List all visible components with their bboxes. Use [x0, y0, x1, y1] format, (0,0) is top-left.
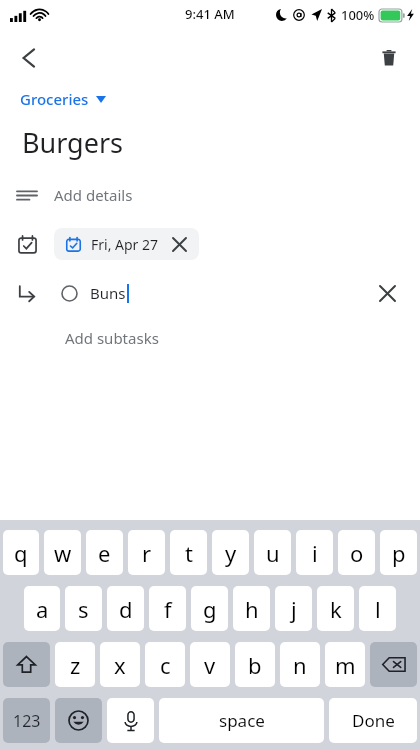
staticText: s	[78, 594, 89, 624]
button[interactable]: b	[235, 642, 275, 687]
button[interactable]: Remove date	[171, 236, 187, 252]
button[interactable]: Back	[6, 35, 52, 81]
button[interactable]: space	[159, 698, 324, 743]
button[interactable]: Voice input	[107, 698, 154, 743]
button[interactable]: d	[107, 586, 144, 631]
staticText: i	[312, 538, 318, 568]
button[interactable]: j	[275, 586, 312, 631]
staticText: u	[266, 538, 280, 568]
button[interactable]: m	[325, 642, 365, 687]
button[interactable]: Add subtasks	[0, 316, 420, 360]
button[interactable]: v	[190, 642, 230, 687]
staticText: w	[54, 538, 72, 568]
staticText: g	[203, 594, 217, 624]
staticText: Buns	[90, 283, 126, 303]
staticText: z	[70, 650, 81, 680]
button[interactable]: n	[280, 642, 320, 687]
staticText: c	[160, 650, 171, 680]
staticText: j	[291, 594, 297, 624]
staticText: 100%	[341, 6, 375, 24]
button[interactable]: Add details	[0, 172, 420, 218]
button[interactable]: u	[254, 530, 291, 575]
button[interactable]: x	[100, 642, 140, 687]
button[interactable]: k	[317, 586, 354, 631]
staticText: q	[14, 538, 28, 568]
button[interactable]: f	[149, 586, 186, 631]
staticText: k	[330, 594, 342, 624]
staticText: 9:41 AM	[185, 5, 235, 23]
button[interactable]: r	[128, 530, 165, 575]
button[interactable]: Remove subtask	[372, 278, 402, 308]
button[interactable]: a	[24, 586, 60, 631]
button[interactable]: w	[44, 530, 81, 575]
button[interactable]: p	[380, 530, 417, 575]
button[interactable]: z	[55, 642, 95, 687]
button[interactable]: c	[145, 642, 185, 687]
staticText: Add details	[54, 185, 133, 205]
button[interactable]: i	[296, 530, 333, 575]
staticText: p	[392, 538, 406, 568]
staticText: l	[375, 594, 381, 624]
button[interactable]: Groceries	[20, 86, 106, 112]
button[interactable]: t	[170, 530, 207, 575]
staticText: b	[248, 650, 262, 680]
button[interactable]: Shift	[3, 642, 50, 687]
staticText: y	[225, 538, 237, 568]
staticText: e	[98, 538, 111, 568]
staticText: f	[164, 594, 172, 624]
staticText: t	[185, 538, 193, 568]
staticText: Done	[352, 709, 395, 732]
button[interactable]: Done	[329, 698, 417, 743]
staticText: v	[204, 650, 216, 680]
staticText: x	[114, 650, 126, 680]
button[interactable]: s	[65, 586, 102, 631]
button[interactable]: q	[3, 530, 39, 575]
button[interactable]: Fri, Apr 27	[54, 228, 199, 260]
button[interactable]: Emoji	[55, 698, 102, 743]
staticText: n	[293, 650, 307, 680]
button[interactable]: e	[86, 530, 123, 575]
button[interactable]: Delete	[366, 35, 412, 81]
button[interactable]: y	[212, 530, 249, 575]
button[interactable]: l	[359, 586, 396, 631]
staticText: r	[142, 538, 152, 568]
button[interactable]: o	[338, 530, 375, 575]
button[interactable]: h	[233, 586, 270, 631]
staticText: Groceries	[20, 89, 89, 109]
staticText: Burgers	[22, 124, 124, 161]
staticText: m	[335, 650, 356, 680]
staticText: h	[245, 594, 259, 624]
button[interactable]: 123	[3, 698, 50, 743]
staticText: o	[350, 538, 364, 568]
staticText: space	[219, 709, 265, 732]
button[interactable]: Mark complete	[54, 278, 84, 308]
button[interactable]: Burgers	[0, 112, 420, 172]
staticText: Fri, Apr 27	[91, 235, 159, 254]
button[interactable]: g	[191, 586, 228, 631]
staticText: d	[119, 594, 133, 624]
staticText: Add subtasks	[65, 328, 159, 348]
staticText: a	[36, 594, 49, 624]
button[interactable]: Backspace	[370, 642, 417, 687]
staticText: 123	[13, 710, 41, 732]
